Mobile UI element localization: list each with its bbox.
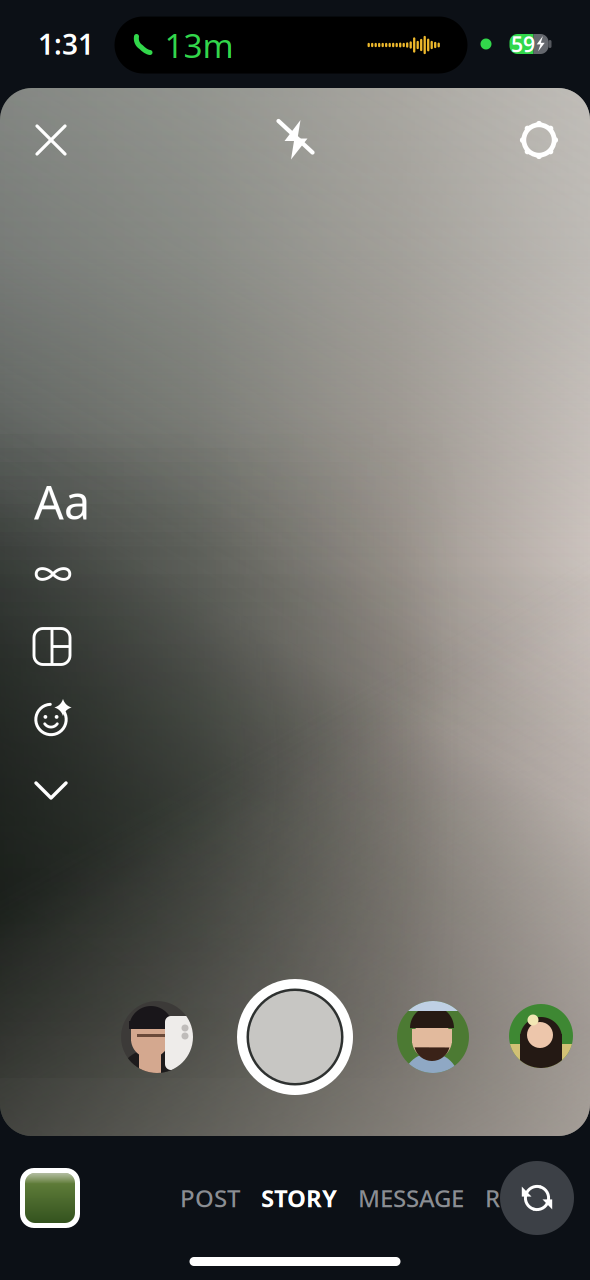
staticText: 13m (164, 23, 233, 67)
staticText: REELS (485, 1182, 552, 1214)
button[interactable]: REELS (485, 1182, 552, 1214)
staticText: STORY (261, 1182, 337, 1214)
button[interactable]: Photo library (20, 1168, 80, 1228)
button[interactable]: Layout (34, 610, 92, 682)
button[interactable]: Switch camera (500, 1161, 574, 1235)
button[interactable]: Story by user one (121, 1001, 193, 1073)
button[interactable]: STORY (261, 1182, 337, 1214)
button[interactable]: Add text (34, 465, 92, 537)
button[interactable]: MESSAGE (358, 1182, 464, 1214)
button[interactable]: Camera settings (510, 111, 568, 169)
staticText: 1:31 (38, 25, 94, 63)
button[interactable]: More tools (34, 754, 92, 826)
staticText: Aa (34, 470, 90, 532)
button[interactable]: Flash off (267, 111, 325, 169)
button[interactable]: Story by user three (512, 1007, 570, 1065)
staticText: POST (180, 1182, 240, 1214)
staticText: MESSAGE (358, 1182, 464, 1214)
button[interactable]: Boomerang (34, 537, 92, 610)
button[interactable]: POST (180, 1182, 240, 1214)
staticText: 59 (511, 30, 535, 58)
button[interactable]: Take photo (237, 979, 353, 1095)
button[interactable]: Effects (34, 682, 92, 754)
button[interactable]: Close camera (22, 111, 80, 169)
button[interactable]: Story by user two (397, 1001, 469, 1073)
